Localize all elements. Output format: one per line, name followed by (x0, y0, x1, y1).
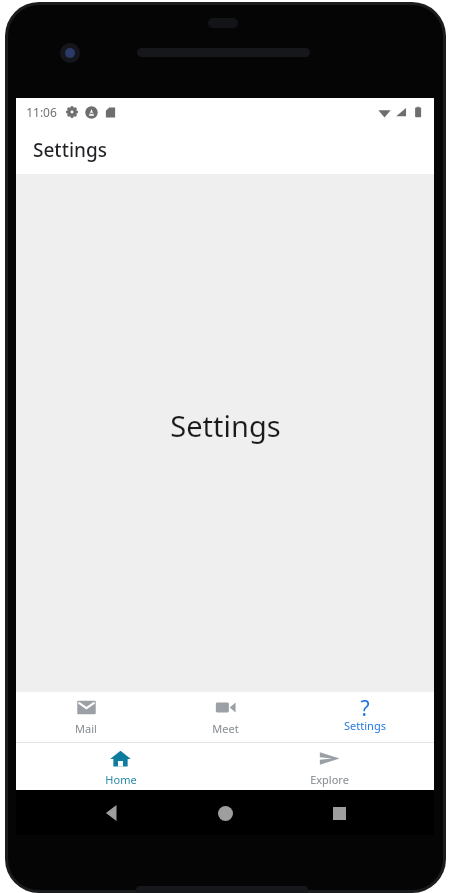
button[interactable]: Meet (156, 692, 295, 736)
button[interactable]: Home (207, 795, 243, 831)
staticText: Meet (212, 721, 239, 736)
button[interactable]: Explore (225, 743, 434, 787)
staticText: ? (360, 694, 370, 717)
staticText: Settings (344, 718, 386, 733)
staticText: Settings (33, 137, 107, 163)
button[interactable]: Home (16, 743, 225, 787)
staticText: Settings (170, 406, 281, 445)
staticText: Explore (310, 772, 349, 787)
button[interactable]: ? (295, 692, 434, 733)
staticText: Home (105, 772, 137, 787)
staticText: Mail (75, 721, 97, 736)
button[interactable]: Mail (16, 692, 156, 736)
button[interactable]: Back (94, 795, 130, 831)
button[interactable]: Recent apps (321, 795, 357, 831)
staticText: 11:06 (26, 104, 57, 120)
